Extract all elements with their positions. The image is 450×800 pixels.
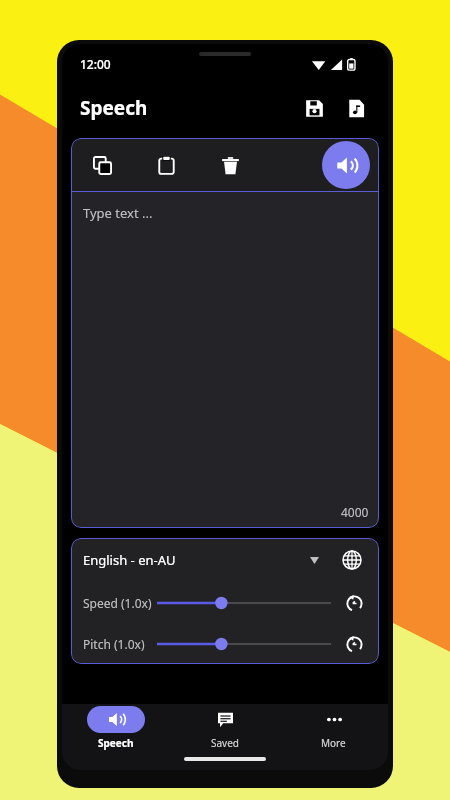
button[interactable]: Type text ... (71, 192, 379, 528)
staticText: Pitch (1.0x) (83, 636, 145, 652)
button[interactable]: More (279, 704, 388, 752)
button[interactable]: Save (296, 90, 332, 126)
button[interactable]: Audio file (338, 90, 374, 126)
button[interactable]: Language (335, 543, 369, 577)
staticText: Saved (211, 736, 239, 750)
button[interactable]: Paste (149, 148, 183, 182)
button[interactable] (157, 589, 331, 617)
staticText: 12:00 (80, 56, 111, 72)
button[interactable]: Reset (339, 629, 369, 659)
staticText: More (321, 736, 346, 750)
staticText: English - en-AU (83, 551, 176, 569)
button[interactable]: Copy (85, 148, 119, 182)
button[interactable]: Delete (213, 148, 247, 182)
staticText: Speed (1.0x) (83, 595, 152, 611)
staticText: Speech (80, 95, 148, 121)
button[interactable]: Saved (170, 704, 279, 752)
button[interactable]: English - en-AU (83, 538, 335, 582)
staticText: Type text ... (83, 204, 153, 222)
staticText: 4000 (341, 504, 369, 520)
button[interactable]: Speech (62, 704, 170, 752)
button[interactable] (157, 630, 331, 658)
button[interactable]: Reset (339, 588, 369, 618)
staticText: Speech (98, 736, 134, 750)
button[interactable]: Speak (322, 141, 370, 189)
